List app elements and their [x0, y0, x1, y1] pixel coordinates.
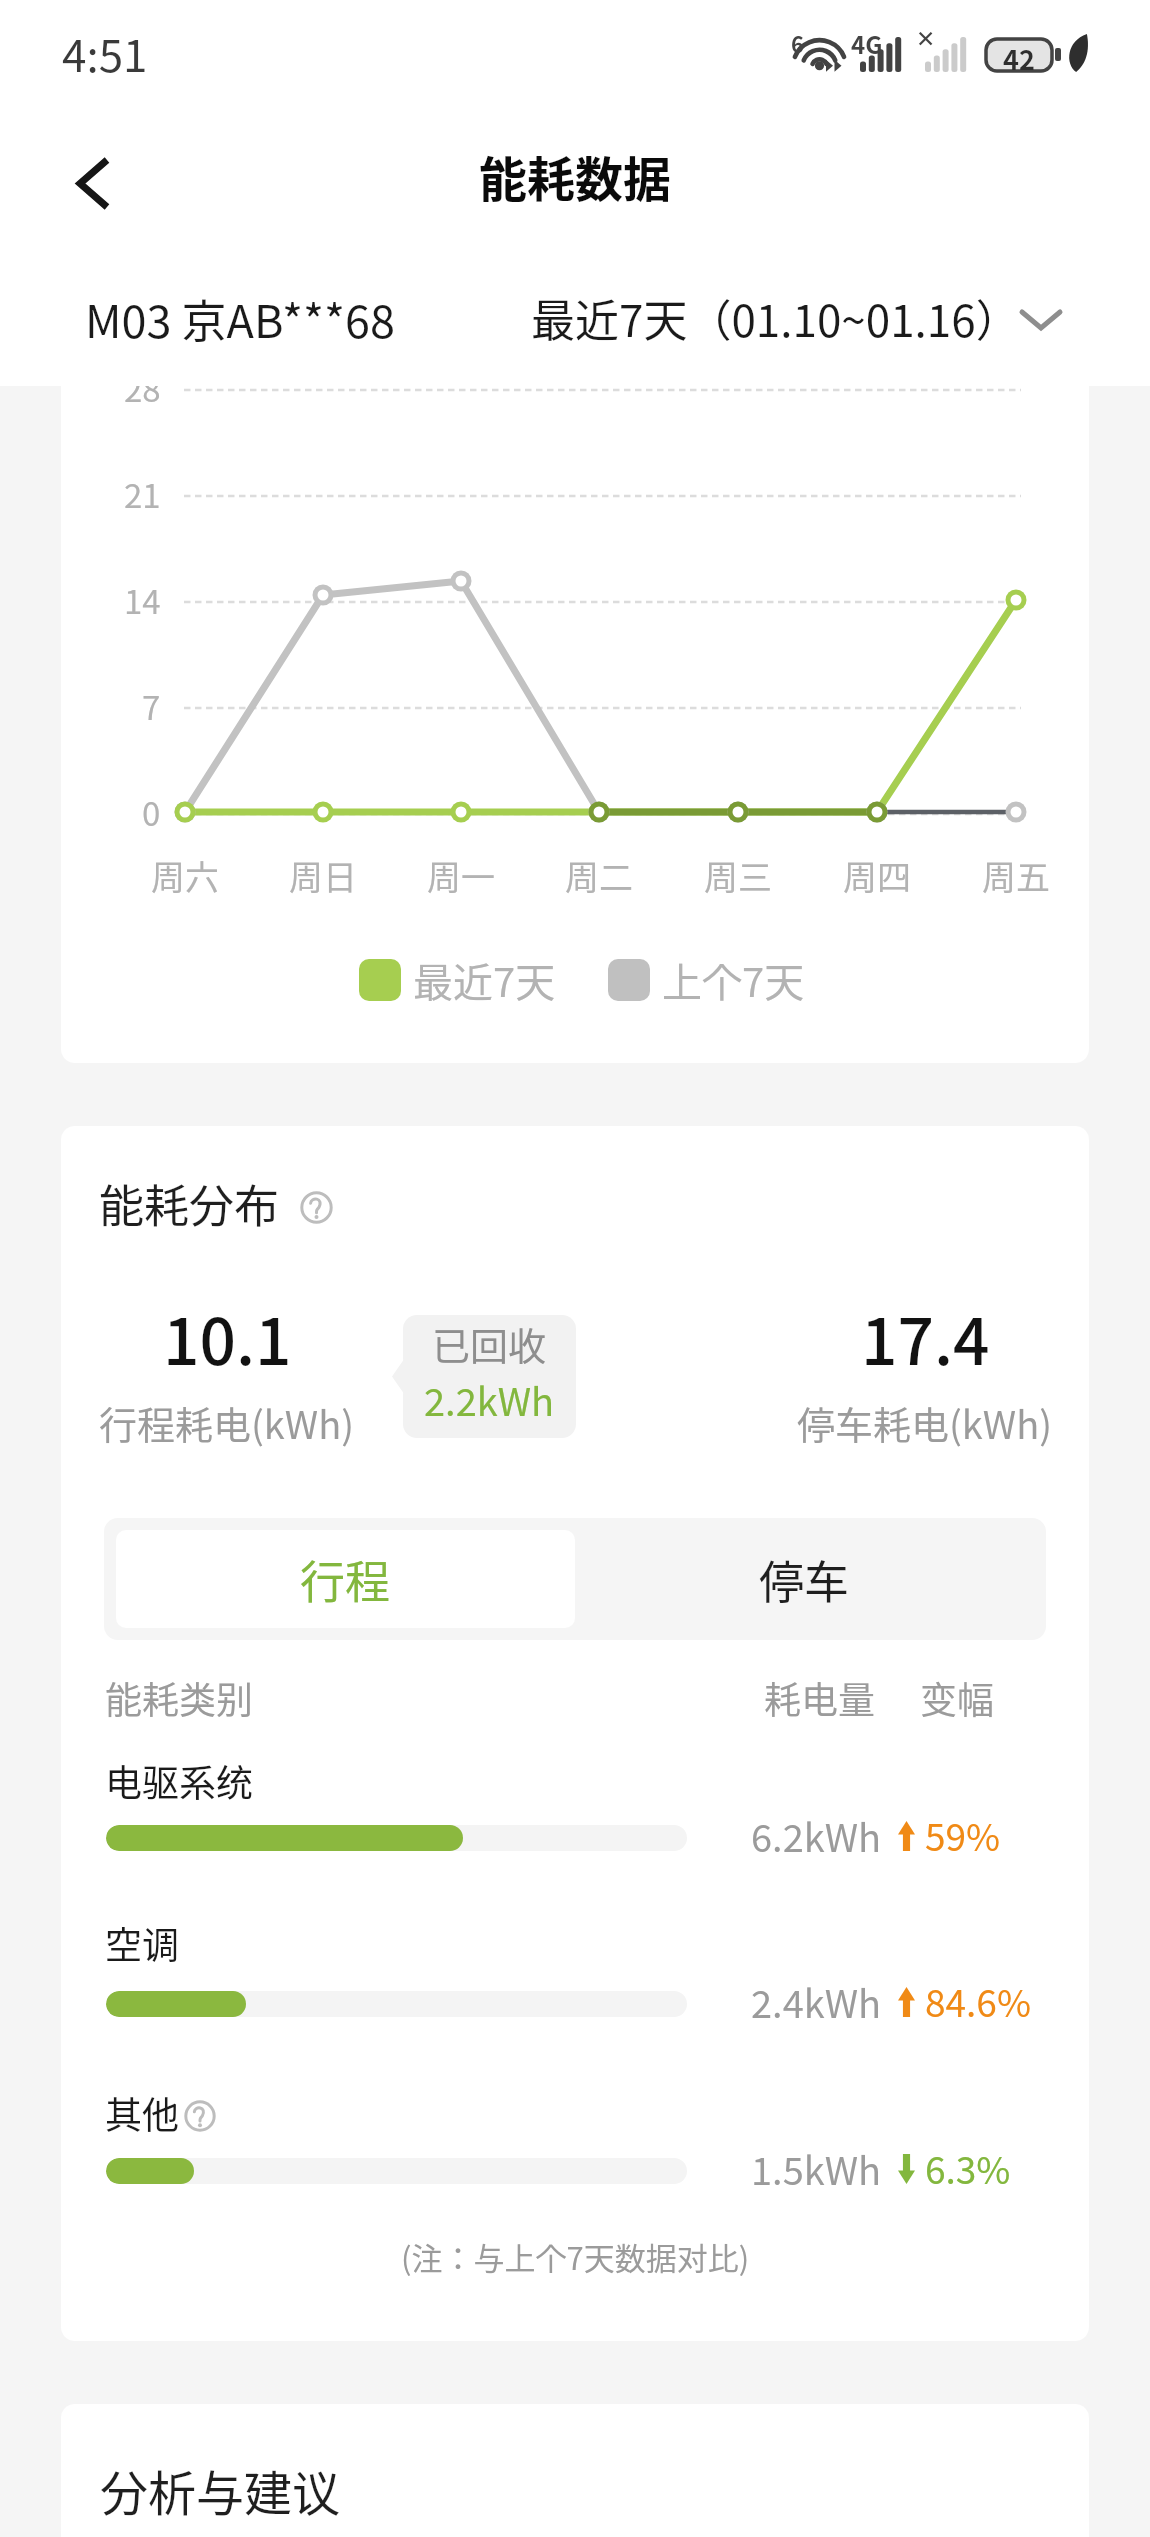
button[interactable]: 停车 — [575, 1530, 1034, 1628]
staticText: 周五 — [982, 851, 1050, 900]
button[interactable]: 行程 — [116, 1530, 575, 1628]
staticText: 1.5kWh — [751, 2141, 882, 2196]
staticText: 周日 — [289, 851, 357, 900]
button[interactable]: About others — [183, 2099, 217, 2133]
staticText: 能耗类别 — [105, 1671, 253, 1725]
staticText: 4:51 — [62, 21, 148, 85]
staticText: 停车耗电(kWh) — [797, 1395, 1053, 1450]
staticText: 7 — [142, 682, 161, 730]
staticText: 42 — [1003, 39, 1035, 71]
staticText: 周一 — [427, 851, 495, 900]
staticText: 84.6% — [925, 1974, 1031, 2028]
button[interactable]: Change date range — [1011, 290, 1071, 350]
staticText: 周三 — [704, 851, 772, 900]
staticText: 电驱系统 — [105, 1754, 253, 1808]
staticText: 2.4kWh — [751, 1974, 882, 2029]
staticText: 周二 — [565, 851, 633, 900]
staticText: 14 — [124, 576, 161, 624]
staticText: 10.1 — [163, 1291, 292, 1384]
staticText: 能耗数据 — [479, 141, 672, 211]
staticText: 2.2kWh — [424, 1372, 555, 1427]
button[interactable]: Back — [38, 128, 148, 238]
staticText: 分析与建议 — [100, 2455, 341, 2525]
staticText: 6.3% — [925, 2141, 1011, 2195]
staticText: 停车 — [759, 1547, 850, 1612]
staticText: M03 京AB***68 — [85, 286, 395, 351]
staticText: 行程耗电(kWh) — [99, 1395, 355, 1450]
staticText: 6.2kWh — [751, 1808, 882, 1863]
staticText: 其他 — [105, 2086, 179, 2140]
staticText: 周六 — [151, 851, 219, 900]
staticText: 17.4 — [861, 1291, 990, 1384]
staticText: 周四 — [843, 851, 911, 900]
staticText: 6 — [791, 27, 804, 59]
staticText: 最近7天 — [413, 951, 556, 1009]
staticText: 上个7天 — [662, 951, 805, 1009]
staticText: ✕ — [916, 26, 936, 53]
staticText: 空调 — [105, 1916, 179, 1970]
staticText: 0 — [142, 788, 161, 836]
staticText: 4G — [851, 26, 883, 61]
staticText: 变幅 — [920, 1671, 994, 1725]
staticText: 耗电量 — [764, 1671, 875, 1725]
staticText: 行程 — [300, 1547, 391, 1612]
staticText: 28 — [124, 386, 161, 412]
staticText: 21 — [124, 470, 161, 518]
staticText: 59% — [925, 1808, 1001, 1862]
staticText: (注：与上个7天数据对比) — [401, 2234, 750, 2279]
staticText: 已回收 — [432, 1316, 547, 1371]
staticText: 最近7天（01.10~01.16） — [531, 286, 1020, 350]
staticText: 能耗分布 — [99, 1171, 280, 1236]
button[interactable]: About energy distribution — [294, 1185, 338, 1229]
